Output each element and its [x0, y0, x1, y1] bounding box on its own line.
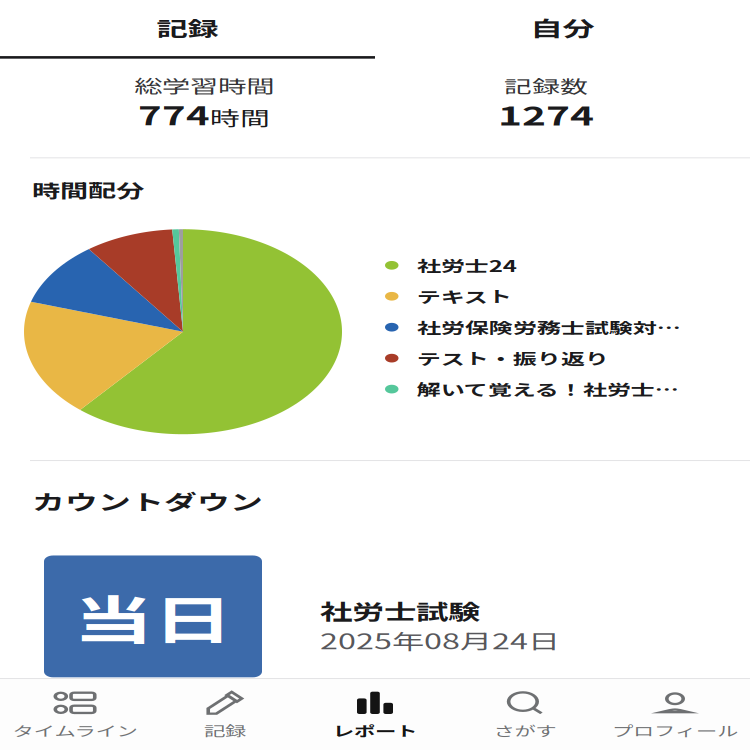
- staticText: 総学習時間: [134, 112, 274, 153]
- button[interactable]: 記録: [0, 0, 375, 91]
- button[interactable]: プロフィール: [600, 678, 750, 750]
- button[interactable]: 記録: [150, 678, 300, 750]
- staticText: 解いて覚える！社労士…: [417, 586, 679, 621]
- staticText: テキスト: [417, 442, 512, 477]
- button[interactable]: タイムライン: [0, 678, 150, 750]
- button[interactable]: レポート: [300, 678, 450, 750]
- staticText: 記録: [156, 19, 218, 65]
- button[interactable]: 自分: [375, 0, 750, 91]
- staticText: 社労士24: [417, 394, 517, 429]
- staticText: 記録数: [504, 112, 588, 153]
- button[interactable]: さがす: [450, 678, 600, 750]
- staticText: 時間配分: [32, 274, 144, 314]
- staticText: 自分: [530, 19, 594, 65]
- staticText: 774: [138, 148, 210, 206]
